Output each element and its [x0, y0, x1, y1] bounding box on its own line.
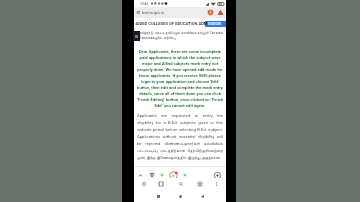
staticText: -AIDED COLLEGES OF EDUCATION ADM — [134, 21, 208, 26]
staticText: Applicants are requested to verify the e… — [137, 112, 223, 161]
button[interactable]: Back — [195, 190, 209, 202]
button[interactable]: Home — [173, 190, 187, 202]
button[interactable]: More options — [211, 179, 221, 189]
button[interactable]: Updates — [168, 170, 178, 180]
button[interactable]: Home — [139, 179, 149, 189]
staticText: bed.tn.gov.in — [142, 10, 165, 15]
staticText: 10:46 — [140, 2, 149, 6]
button[interactable]: Menu — [133, 31, 140, 41]
button[interactable]: Downloads — [217, 9, 224, 16]
button[interactable]: Expand — [135, 170, 145, 180]
button[interactable]: Add — [212, 170, 222, 180]
button[interactable]: Saved — [195, 179, 205, 189]
staticText: சேர்க்கைக்குரிய அறிவிப்பு — [139, 35, 176, 40]
button[interactable]: Recents — [151, 190, 165, 202]
staticText: தமிழ்நாடு அரசு உதவிபெறும் கல்வியியல் கல்… — [139, 30, 223, 35]
staticText: Dear Applicants, there are some incomple… — [135, 49, 225, 108]
button[interactable]: Site information — [207, 9, 214, 16]
staticText: ISSION — [208, 21, 222, 26]
button[interactable]: Search — [176, 179, 186, 189]
button[interactable]: Filter — [147, 170, 157, 180]
button[interactable]: More — [180, 170, 190, 180]
button[interactable]: Emoji — [157, 170, 167, 180]
button[interactable]: Tabs — [156, 179, 166, 189]
